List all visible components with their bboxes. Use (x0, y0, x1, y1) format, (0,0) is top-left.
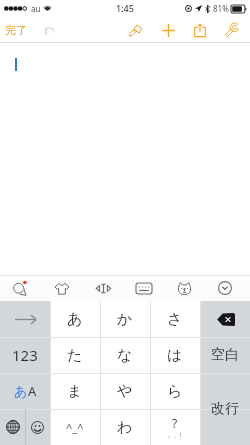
staticText: さ (167, 310, 183, 329)
button[interactable]: た (50, 337, 100, 373)
staticText: A (28, 382, 37, 400)
button[interactable]: ま (50, 373, 100, 409)
button[interactable]: Settings (220, 18, 244, 42)
button[interactable]: Next keyboard (0, 409, 25, 445)
button[interactable]: Cat sticker (171, 275, 197, 301)
staticText: は (167, 346, 183, 365)
staticText: 81% (213, 3, 229, 14)
button[interactable]: な (100, 337, 150, 373)
staticText: あ (67, 310, 83, 329)
staticText: 1:45 (116, 2, 134, 14)
button[interactable]: か (100, 301, 150, 337)
button[interactable]: Backspace (200, 301, 250, 337)
staticText: ? (172, 415, 178, 431)
staticText: 改行 (211, 400, 239, 418)
staticText: か (117, 310, 133, 329)
button[interactable]: ら (150, 373, 200, 409)
button[interactable]: わ (100, 409, 150, 445)
staticText: ^_^ (66, 420, 84, 435)
staticText: 。、! (168, 431, 182, 439)
button[interactable]: 完了 (0, 19, 32, 41)
staticText: ら (167, 382, 183, 401)
button[interactable]: Hide keyboard (212, 275, 238, 301)
staticText: 123 (12, 345, 38, 365)
button[interactable]: さ (150, 301, 200, 337)
button[interactable]: Switch input (0, 373, 50, 409)
staticText: au (31, 3, 41, 14)
staticText: な (117, 346, 133, 365)
button[interactable]: Add (156, 18, 180, 42)
button[interactable]: ^_^ (50, 409, 100, 445)
staticText: ま (67, 382, 83, 401)
staticText: 完了 (5, 23, 27, 37)
button[interactable]: Punctuation (150, 409, 200, 445)
button[interactable]: Emoji (25, 409, 50, 445)
staticText: あ (14, 383, 28, 399)
button[interactable]: あ (50, 301, 100, 337)
staticText: た (67, 346, 83, 365)
staticText: わ (117, 418, 133, 437)
staticText: 空白 (211, 346, 239, 364)
button[interactable]: Keyboard (131, 275, 157, 301)
button[interactable]: Space (200, 337, 250, 373)
staticText: や (117, 382, 133, 401)
button[interactable]: Messages (6, 275, 32, 301)
button[interactable]: や (100, 373, 150, 409)
button[interactable]: Markup (124, 18, 148, 42)
button[interactable]: Numbers (0, 337, 50, 373)
button[interactable]: Share (188, 18, 212, 42)
button[interactable]: Stickers (49, 275, 75, 301)
button[interactable]: Move cursor (90, 275, 116, 301)
button[interactable]: は (150, 337, 200, 373)
button[interactable]: 改行 (200, 373, 250, 445)
button[interactable]: Next candidate (0, 301, 50, 337)
button[interactable]: Undo (37, 19, 59, 41)
